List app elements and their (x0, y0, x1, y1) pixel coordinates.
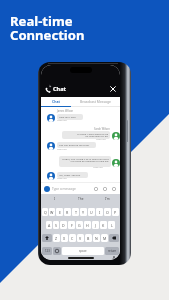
staticText: Z (55, 236, 58, 241)
staticText: M (103, 236, 107, 241)
staticText: X (63, 236, 66, 241)
button[interactable]: Voice input (111, 255, 116, 260)
staticText: I'm (105, 197, 110, 201)
staticText: Hi there. There seems to be an issue wit… (64, 132, 108, 138)
staticText: 10:24 AM (57, 148, 67, 151)
button[interactable]: Camera (102, 186, 108, 192)
button[interactable]: C (69, 234, 76, 242)
staticText: Connection (10, 26, 85, 44)
button[interactable]: Y (80, 208, 87, 216)
button[interactable]: R (64, 208, 71, 216)
button[interactable]: I (41, 194, 68, 204)
staticText: C (71, 236, 74, 241)
staticText: Q (44, 210, 47, 215)
button[interactable]: Q (42, 208, 48, 216)
staticText: Yes, Great. See you soon. (59, 173, 86, 177)
button[interactable]: S (53, 221, 59, 229)
button[interactable]: F (68, 221, 75, 229)
button[interactable]: V (77, 234, 84, 242)
staticText: 10:25 AM (93, 166, 103, 169)
staticText: A (48, 223, 51, 228)
staticText: E (59, 210, 61, 215)
button[interactable]: K (100, 221, 107, 229)
staticText: P (114, 210, 117, 215)
staticText: space (79, 249, 87, 253)
staticText: The (78, 197, 84, 201)
staticText: N (95, 236, 98, 241)
staticText: Alright, Can I bring it by in about an h… (61, 157, 109, 163)
button[interactable]: M (101, 234, 108, 242)
button[interactable]: D (60, 221, 67, 229)
staticText: I (99, 210, 101, 215)
staticText: H (86, 223, 89, 228)
staticText: K (102, 223, 105, 228)
staticText: O (106, 210, 109, 215)
button[interactable]: Z (53, 234, 60, 242)
button[interactable]: G (76, 221, 83, 229)
staticText: L (111, 223, 113, 228)
button[interactable]: Broadcast Message (71, 97, 120, 106)
staticText: Broadcast Message (80, 99, 111, 104)
button[interactable]: J (92, 221, 99, 229)
button[interactable]: O (104, 208, 111, 216)
staticText: Real-time (10, 12, 73, 30)
button[interactable]: Attach (111, 186, 117, 192)
button[interactable]: space (62, 247, 104, 255)
staticText: J (95, 223, 96, 228)
staticText: Chat (52, 99, 60, 104)
button[interactable]: Close (108, 84, 117, 93)
staticText: Sarah Wilson (94, 127, 110, 131)
button[interactable]: Emoji (93, 186, 99, 192)
staticText: Chat (53, 85, 67, 93)
staticText: D (62, 223, 65, 228)
staticText: I (54, 197, 56, 201)
staticText: W (50, 210, 54, 215)
staticText: Y (82, 210, 85, 215)
button[interactable]: The (68, 194, 94, 204)
button[interactable]: I (96, 208, 103, 216)
button[interactable]: U (88, 208, 95, 216)
button[interactable]: P (112, 208, 119, 216)
button[interactable]: N (93, 234, 100, 242)
button[interactable]: Backspace (109, 234, 119, 242)
button[interactable]: I'm (94, 194, 120, 204)
staticText: U (90, 210, 93, 215)
button[interactable]: Emoji keyboard (53, 247, 61, 255)
staticText: S (55, 223, 57, 228)
staticText: 10:26 AM (57, 177, 67, 180)
button[interactable]: 123 (42, 247, 52, 255)
button[interactable]: E (56, 208, 63, 216)
button[interactable]: Shift (42, 234, 52, 242)
staticText: return (108, 249, 117, 253)
button[interactable]: A (46, 221, 52, 229)
button[interactable]: H (84, 221, 91, 229)
staticText: 10:22 AM (57, 119, 67, 122)
staticText: R (66, 210, 69, 215)
staticText: How can I help you? (59, 115, 81, 119)
staticText: G (78, 223, 81, 228)
staticText: James Wilson (57, 109, 74, 113)
button[interactable]: return (105, 247, 119, 255)
staticText: 123 (45, 249, 50, 253)
staticText: F (71, 223, 73, 228)
button[interactable]: Chat (41, 97, 71, 106)
button[interactable]: B (85, 234, 92, 242)
staticText: T (75, 210, 77, 215)
staticText: V (79, 236, 82, 241)
button[interactable]: X (61, 234, 68, 242)
button[interactable]: T (72, 208, 79, 216)
button[interactable]: W (49, 208, 55, 216)
staticText: Can you bring up the Front Desk? (59, 143, 94, 147)
staticText: 10:23 AM (96, 138, 106, 141)
staticText: B (87, 236, 90, 241)
button[interactable]: L (108, 221, 115, 229)
staticText: Type a message (52, 187, 76, 191)
